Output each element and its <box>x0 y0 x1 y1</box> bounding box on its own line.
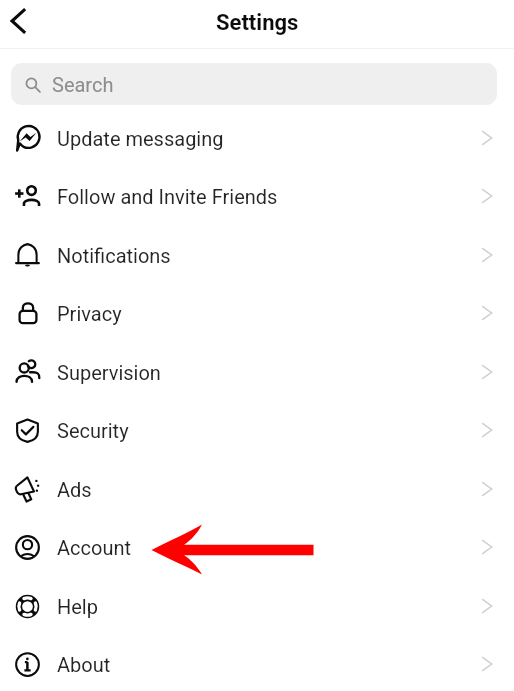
button[interactable]: Ads <box>0 460 514 518</box>
button[interactable]: About <box>0 635 514 691</box>
staticText: Update messaging <box>57 127 224 150</box>
staticText: Search <box>52 73 114 96</box>
button[interactable]: Back <box>0 0 44 44</box>
staticText: Ads <box>57 478 92 501</box>
staticText: Security <box>57 419 129 442</box>
staticText: Follow and Invite Friends <box>57 185 278 208</box>
button[interactable]: Follow and Invite Friends <box>0 167 514 225</box>
button[interactable]: Account <box>0 518 514 576</box>
staticText: Privacy <box>57 302 122 325</box>
button[interactable]: Help <box>0 577 514 635</box>
button[interactable]: Update messaging <box>0 109 514 167</box>
button[interactable]: Supervision <box>0 343 514 401</box>
button[interactable]: Search <box>11 63 497 105</box>
button[interactable]: Security <box>0 401 514 459</box>
staticText: Settings <box>216 10 299 36</box>
staticText: About <box>57 653 111 676</box>
staticText: Supervision <box>57 361 161 384</box>
staticText: Account <box>57 536 132 559</box>
staticText: Help <box>57 595 98 618</box>
button[interactable]: Privacy <box>0 284 514 342</box>
button[interactable]: Notifications <box>0 226 514 284</box>
staticText: Notifications <box>57 244 171 267</box>
